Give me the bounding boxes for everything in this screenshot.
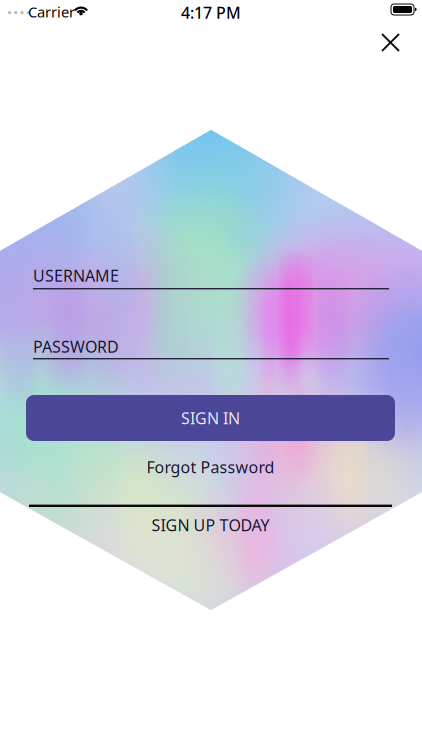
- staticText: SIGN UP TODAY: [151, 514, 269, 536]
- button[interactable]: Forgot Password: [26, 453, 395, 481]
- button[interactable]: SIGN IN: [26, 395, 395, 441]
- staticText: Forgot Password: [146, 456, 274, 478]
- staticText: PASSWORD: [33, 336, 119, 357]
- staticText: Carrier: [28, 2, 75, 21]
- staticText: SIGN IN: [181, 407, 240, 429]
- button[interactable]: SIGN UP TODAY: [29, 511, 392, 539]
- staticText: 4:17 PM: [181, 2, 241, 23]
- button[interactable]: Close: [369, 21, 412, 64]
- staticText: USERNAME: [33, 265, 119, 286]
